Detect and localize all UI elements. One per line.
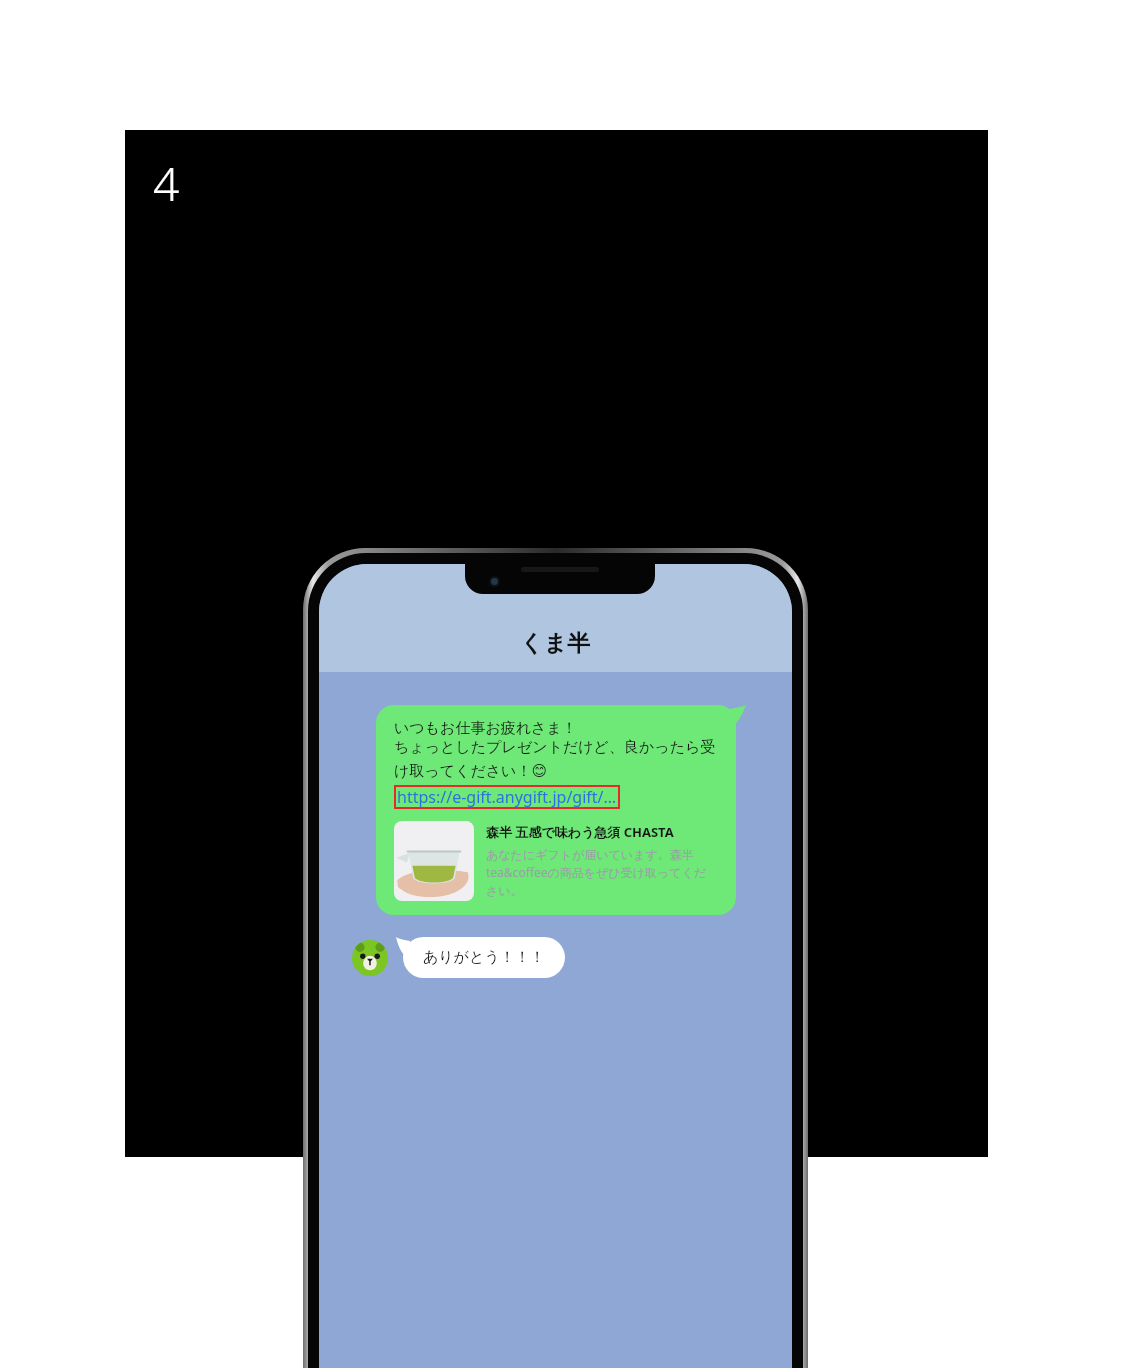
button[interactable]: いつもお仕事お疲れさま！ <box>376 705 736 915</box>
button[interactable]: 森半 五感で味わう急須 CHASTA <box>394 821 718 901</box>
button[interactable]: https://e-gift.anygift.jp/gift/… <box>397 786 617 808</box>
staticText: https://e-gift.anygift.jp/gift/… <box>397 786 617 808</box>
staticText: いつもお仕事お疲れさま！ <box>394 719 577 738</box>
staticText: ありがとう！！！ <box>423 948 545 967</box>
staticText: 森半 五感で味わう急須 CHASTA <box>486 823 674 841</box>
staticText: あなたにギフトが届いています。森半tea&coffeeの商品をぜひ受け取ってくだ… <box>486 847 718 899</box>
button[interactable]: ありがとう！！！ <box>403 937 565 978</box>
staticText: くま半 <box>520 629 591 658</box>
staticText: ちょっとしたプレゼントだけど、良かったら受け取ってください！😊 <box>394 738 718 781</box>
button[interactable]: Profile avatar <box>352 940 388 976</box>
staticText: 4 <box>153 152 180 215</box>
